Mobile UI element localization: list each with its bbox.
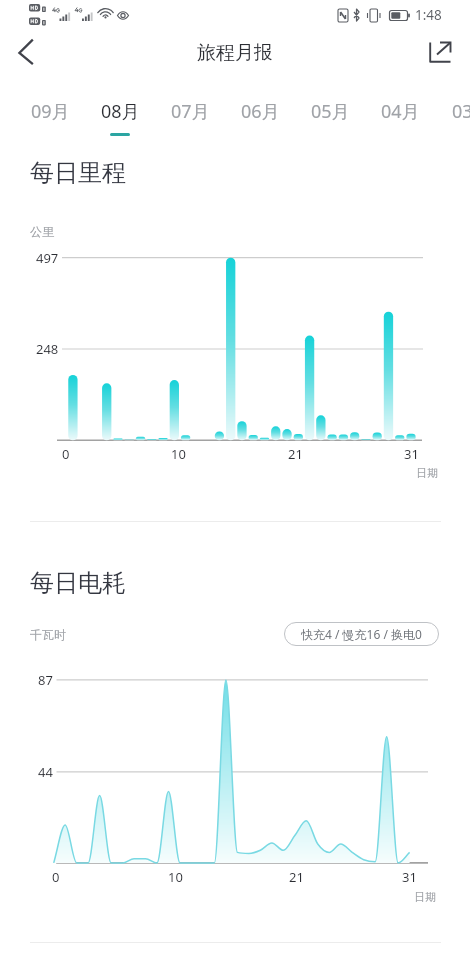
- button[interactable]: 快充4 / 慢充16 / 换电0: [284, 622, 439, 646]
- button[interactable]: Back: [4, 30, 48, 74]
- staticText: 05月: [311, 99, 350, 124]
- staticText: 0: [52, 868, 60, 886]
- staticText: 44: [38, 763, 53, 781]
- button[interactable]: 09月: [15, 88, 85, 138]
- staticText: 07月: [171, 99, 210, 124]
- staticText: 21: [289, 868, 304, 886]
- staticText: 10: [168, 868, 183, 886]
- staticText: 旅程月报: [197, 41, 273, 65]
- staticText: 1:48: [415, 6, 442, 24]
- button[interactable]: 05月: [295, 88, 365, 138]
- staticText: 08月: [101, 99, 140, 124]
- staticText: 31: [404, 445, 419, 463]
- staticText: 03月: [452, 99, 470, 124]
- staticText: 497: [36, 249, 59, 267]
- staticText: 248: [36, 340, 59, 358]
- staticText: 0: [62, 445, 70, 463]
- staticText: 06月: [241, 99, 280, 124]
- button[interactable]: 08月: [85, 88, 155, 138]
- staticText: 10: [171, 445, 186, 463]
- staticText: 公里: [30, 224, 54, 239]
- staticText: 每日里程: [30, 158, 126, 188]
- staticText: 每日电耗: [30, 568, 126, 598]
- button[interactable]: 06月: [225, 88, 295, 138]
- staticText: 31: [402, 868, 417, 886]
- staticText: 日期: [414, 890, 436, 904]
- staticText: 快充4 / 慢充16 / 换电0: [301, 626, 422, 642]
- staticText: 日期: [416, 466, 438, 480]
- button[interactable]: 03月: [446, 88, 470, 138]
- staticText: 87: [38, 671, 53, 689]
- button[interactable]: Share: [420, 32, 464, 76]
- button[interactable]: 07月: [155, 88, 225, 138]
- button[interactable]: 04月: [365, 88, 435, 138]
- staticText: 04月: [381, 99, 420, 124]
- staticText: 09月: [31, 99, 70, 124]
- staticText: 21: [288, 445, 303, 463]
- staticText: 千瓦时: [30, 627, 66, 642]
